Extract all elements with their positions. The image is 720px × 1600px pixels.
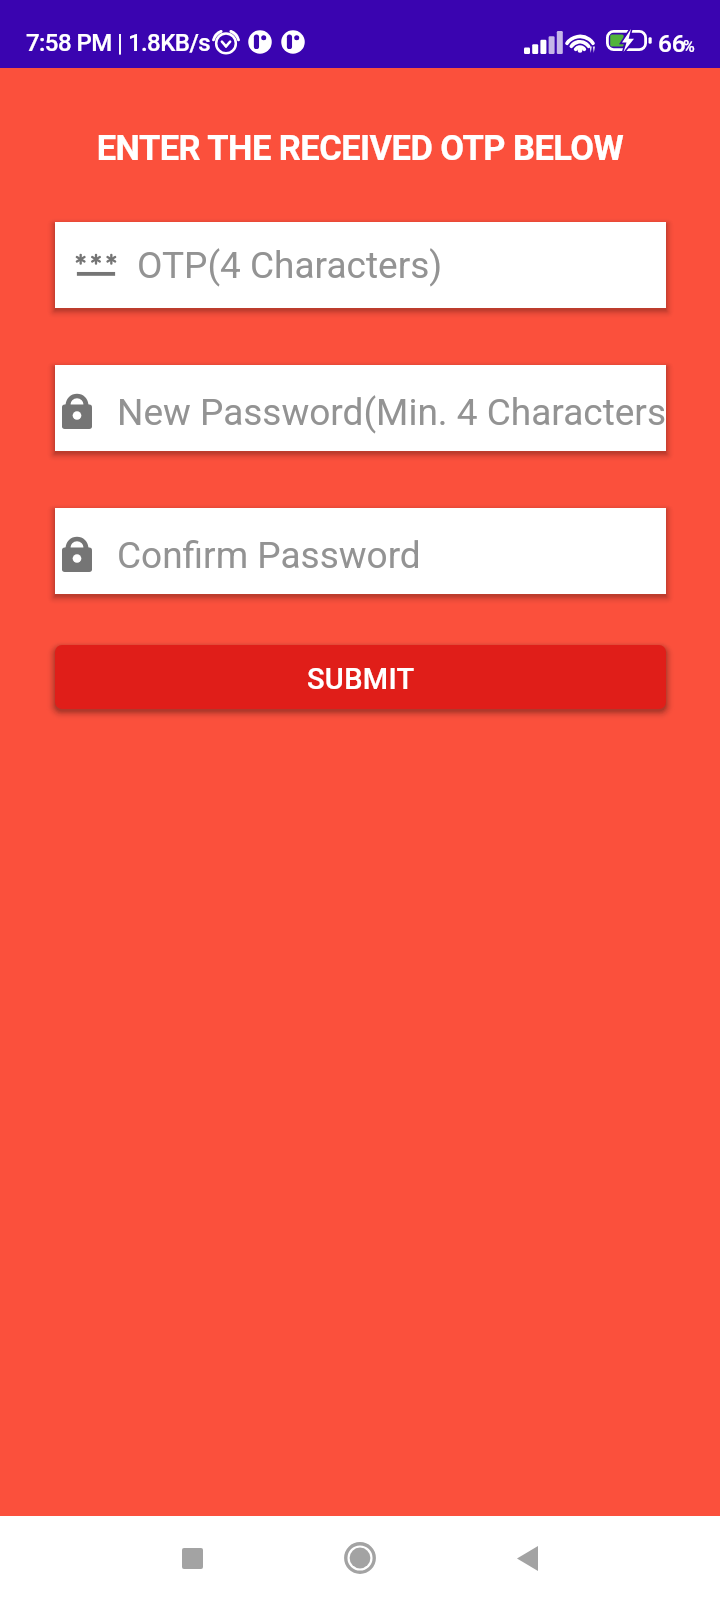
button[interactable]: OTP(4 Characters) [55,222,666,308]
staticText: 7:58 PM | 1.8KB/s [26,29,211,57]
button[interactable]: Home [318,1516,402,1600]
button[interactable]: New Password(Min. 4 Characters) [55,365,666,451]
button[interactable]: Back [485,1516,569,1600]
button[interactable]: Confirm Password [55,508,666,594]
staticText: ENTER THE RECEIVED OTP BELOW [0,128,720,168]
staticText: New Password(Min. 4 Characters) [117,391,666,434]
staticText: % [683,37,695,56]
staticText: SUBMIT [307,662,415,696]
button[interactable]: SUBMIT [55,645,666,709]
staticText: Confirm Password [117,534,421,577]
staticText: OTP(4 Characters) [137,244,443,287]
staticText: 66 [658,29,686,58]
button[interactable]: Recent apps [150,1516,234,1600]
